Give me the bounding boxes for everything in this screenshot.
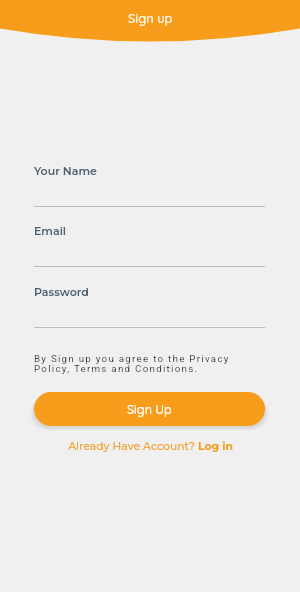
staticText: By Sign up you agree to the Privacy Poli… bbox=[34, 353, 234, 374]
button[interactable]: Sign up bbox=[0, 5, 300, 31]
staticText: Email bbox=[34, 224, 66, 237]
button[interactable]: Email bbox=[34, 224, 265, 267]
button[interactable]: Already Have Account? Log in bbox=[0, 437, 300, 455]
staticText: Already Have Account? Log in bbox=[68, 440, 233, 453]
staticText: Sign up bbox=[128, 10, 173, 26]
button[interactable]: Your Name bbox=[34, 164, 265, 207]
button[interactable]: Sign Up bbox=[34, 392, 265, 426]
staticText: Your Name bbox=[34, 164, 97, 177]
button[interactable]: Password bbox=[34, 285, 265, 328]
staticText: Password bbox=[34, 285, 89, 298]
staticText: Sign Up bbox=[127, 402, 172, 417]
